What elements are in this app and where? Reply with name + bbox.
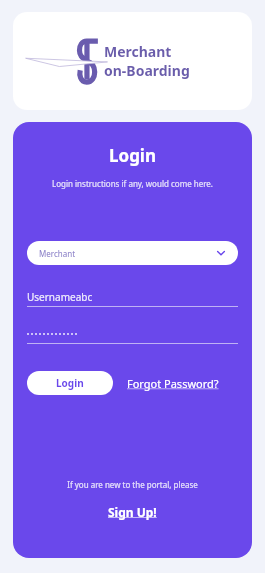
staticText: Login instructions if any, would come he…: [27, 178, 238, 189]
staticText: If you are new to the portal, please: [27, 479, 238, 490]
other: Merchant on-Boarding logo: [75, 38, 101, 84]
staticText: on-Boarding: [104, 61, 190, 80]
staticText: Merchant: [39, 248, 76, 259]
staticText: Sign Up!: [108, 504, 157, 520]
staticText: Merchant: [104, 42, 172, 61]
button[interactable]: Merchant: [27, 241, 238, 265]
staticText: Forgot Password?: [127, 376, 219, 391]
button[interactable]: [27, 324, 238, 343]
button[interactable]: Sign Up!: [27, 504, 238, 520]
staticText: Login: [56, 376, 84, 390]
staticText: Usernameabc: [27, 290, 93, 304]
button[interactable]: Login: [27, 371, 113, 395]
button[interactable]: Usernameabc: [27, 287, 238, 306]
staticText: Login: [27, 144, 238, 167]
button[interactable]: Forgot Password?: [127, 372, 219, 395]
